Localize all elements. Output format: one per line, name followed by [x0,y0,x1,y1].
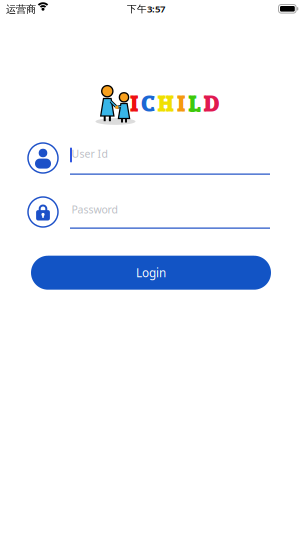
button[interactable]: Login [31,256,271,290]
staticText: H [158,88,174,119]
staticText: User Id [70,146,125,168]
staticText: Password [70,200,144,222]
staticText: Login [136,265,166,281]
staticText: 下午3:57 [127,2,165,15]
staticText: Password [71,202,117,216]
staticText: I [177,88,185,119]
staticText: 运营商 [6,3,36,16]
textField[interactable]: Password [70,200,270,222]
staticText: C [141,88,154,119]
staticText: D [203,88,219,119]
staticText: User Id [71,147,107,161]
staticText: L [188,88,200,119]
staticText: I [130,88,138,119]
textField[interactable]: User Id [70,146,270,168]
